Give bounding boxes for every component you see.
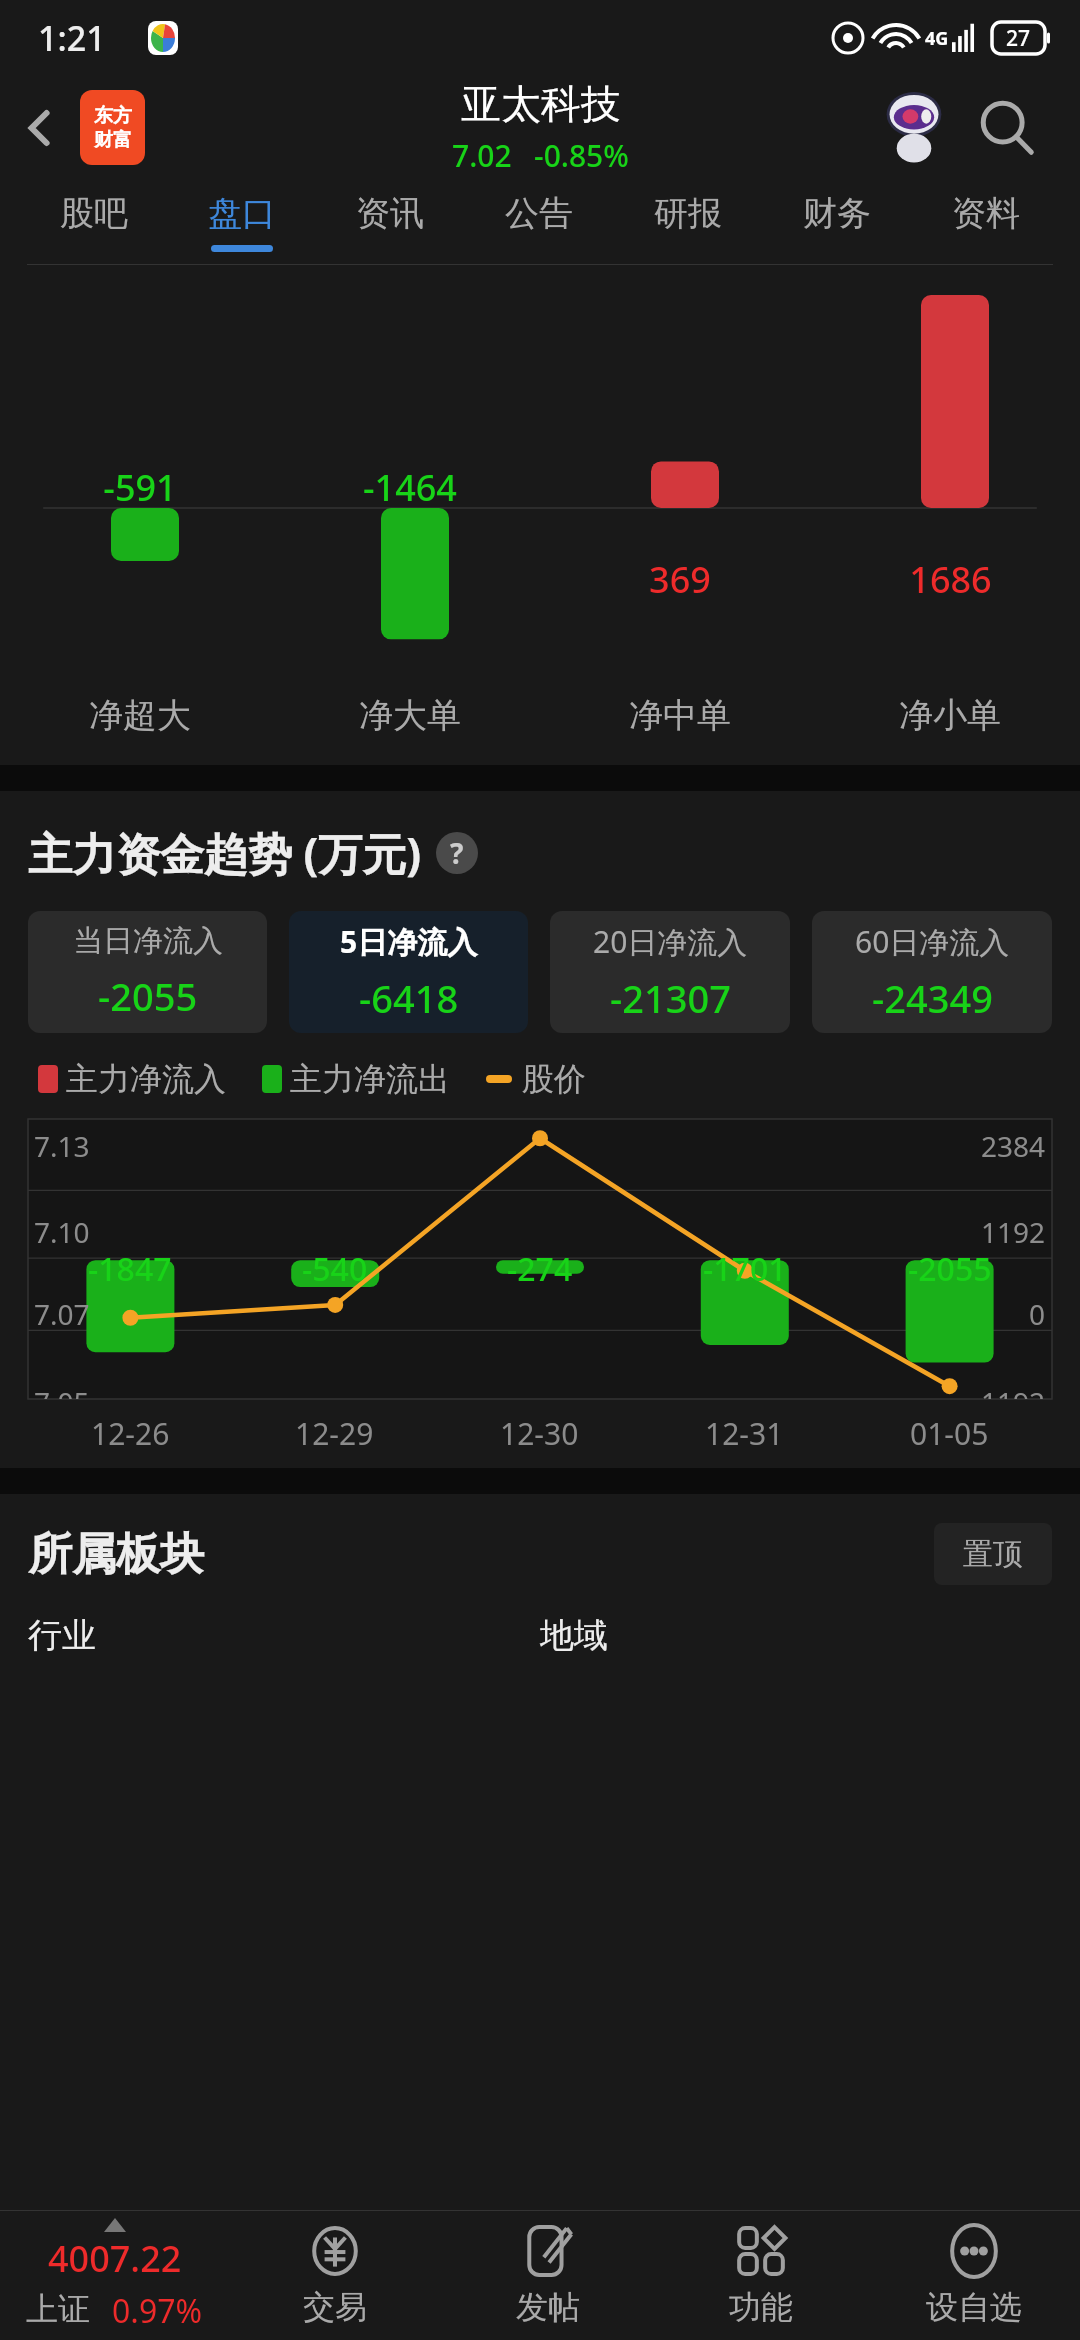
staticText: -1701 (703, 1247, 787, 1291)
staticText: -24349 (872, 972, 993, 1024)
staticText: 股吧 (60, 192, 128, 235)
staticText: 5日净流入 (340, 921, 478, 962)
staticText: 12-29 (295, 1413, 374, 1454)
staticText: -1847 (88, 1247, 172, 1291)
staticText: 4007.22 (48, 2234, 182, 2283)
staticText: 27 (1006, 24, 1031, 53)
staticText: 净大单 (359, 694, 461, 737)
staticText: 亚太科技 (461, 79, 621, 129)
staticText: 功能 (729, 2287, 793, 2327)
staticText: 7.10 (34, 1213, 90, 1251)
staticText: -2055 (98, 970, 198, 1022)
staticText: 地域 (540, 1614, 608, 1657)
staticText: 0 (1029, 1295, 1046, 1333)
staticText: 所属板块 (28, 1527, 204, 1582)
button[interactable]: 净超大 (0, 694, 270, 737)
staticText: 1192 (981, 1213, 1046, 1251)
staticText: 盘口 (208, 192, 276, 235)
staticText: 股价 (522, 1059, 586, 1099)
staticText: 行业 (28, 1614, 96, 1657)
button[interactable]: 交易 (229, 2225, 441, 2327)
staticText: 7.13 (34, 1127, 90, 1165)
staticText: 12-31 (705, 1413, 784, 1454)
staticText: 上证 (26, 2289, 90, 2329)
staticText: 发帖 (516, 2287, 580, 2327)
button[interactable]: 公告 (464, 180, 613, 265)
button[interactable]: 4007.22 (0, 2218, 229, 2333)
staticText: 净小单 (899, 694, 1001, 737)
staticText: 交易 (303, 2287, 367, 2327)
staticText: 12-26 (91, 1413, 170, 1454)
staticText: -591 (103, 463, 177, 512)
staticText: -1192 (972, 1383, 1046, 1399)
button[interactable]: 置顶 (934, 1523, 1052, 1585)
button[interactable]: 发帖 (441, 2225, 654, 2327)
staticText: 财务 (803, 192, 871, 235)
staticText: 60日净流入 (855, 921, 1010, 962)
staticText: -2055 (908, 1247, 992, 1291)
button[interactable]: 当日净流入 (28, 911, 267, 1033)
staticText: ? (450, 834, 464, 872)
staticText: 1:21 (38, 15, 106, 61)
staticText: -21307 (610, 972, 731, 1024)
button[interactable]: 资讯 (316, 180, 464, 265)
button[interactable]: 盘口 (168, 180, 316, 265)
staticText: -540 (302, 1247, 368, 1291)
button[interactable]: 净小单 (810, 694, 1080, 737)
staticText: 财富 (94, 128, 132, 152)
staticText: 01-05 (910, 1413, 989, 1454)
staticText: 置顶 (963, 1535, 1023, 1573)
staticText: 7.02 (452, 135, 512, 176)
staticText: 净中单 (629, 694, 731, 737)
staticText: 7.07 (34, 1295, 90, 1333)
staticText: 20日净流入 (593, 921, 748, 962)
button[interactable]: 20日净流入 (550, 911, 790, 1033)
staticText: 7.05 (34, 1383, 90, 1399)
staticText: 当日净流入 (73, 922, 223, 960)
button[interactable]: 东方财富 (80, 90, 145, 165)
staticText: 4G (925, 26, 949, 51)
button[interactable]: AI assistant (878, 92, 950, 164)
staticText: -6418 (359, 972, 459, 1024)
button[interactable]: 研报 (613, 180, 762, 265)
staticText: 主力净流出 (290, 1059, 450, 1099)
button[interactable]: 净大单 (270, 694, 540, 737)
staticText: 资料 (952, 192, 1020, 235)
staticText: 主力净流入 (66, 1059, 226, 1099)
staticText: 研报 (654, 192, 722, 235)
button[interactable]: 60日净流入 (812, 911, 1052, 1033)
button[interactable]: Search (962, 83, 1052, 173)
button[interactable]: 设自选 (867, 2225, 1080, 2327)
staticText: 主力资金趋势 (万元) (28, 823, 422, 883)
staticText: 0.97% (112, 2289, 203, 2333)
staticText: 369 (649, 555, 711, 604)
staticText: 设自选 (926, 2287, 1022, 2327)
staticText: 公告 (505, 192, 573, 235)
staticText: 12-30 (500, 1413, 579, 1454)
staticText: 2384 (981, 1127, 1046, 1165)
button[interactable]: 股吧 (20, 180, 168, 265)
staticText: -1464 (363, 463, 457, 512)
staticText: 1686 (909, 555, 992, 604)
staticText: 资讯 (356, 192, 424, 235)
button[interactable]: 5日净流入 (289, 911, 528, 1033)
staticText: 东方 (94, 104, 132, 128)
button[interactable]: 财务 (762, 180, 911, 265)
button[interactable]: 功能 (654, 2225, 867, 2327)
staticText: -274 (507, 1247, 573, 1291)
button[interactable]: 资料 (911, 180, 1060, 265)
button[interactable]: 净中单 (540, 694, 810, 737)
staticText: -0.85% (534, 135, 629, 176)
staticText: 净超大 (89, 694, 191, 737)
button[interactable]: Back (0, 75, 80, 180)
button[interactable]: Help (436, 832, 478, 874)
